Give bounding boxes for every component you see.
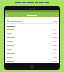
- button[interactable]: [6, 40, 58, 43]
- button[interactable]: [6, 32, 58, 35]
- button[interactable]: [6, 28, 58, 31]
- button[interactable]: [6, 52, 58, 55]
- button[interactable]: [6, 56, 58, 59]
- button[interactable]: [6, 36, 58, 39]
- button[interactable]: [6, 18, 58, 23]
- button[interactable]: [6, 44, 58, 47]
- button[interactable]: [6, 60, 58, 62]
- button[interactable]: [6, 48, 58, 51]
- button[interactable]: Menu: [6, 14, 8, 16]
- button[interactable]: Menu: [5, 12, 59, 17]
